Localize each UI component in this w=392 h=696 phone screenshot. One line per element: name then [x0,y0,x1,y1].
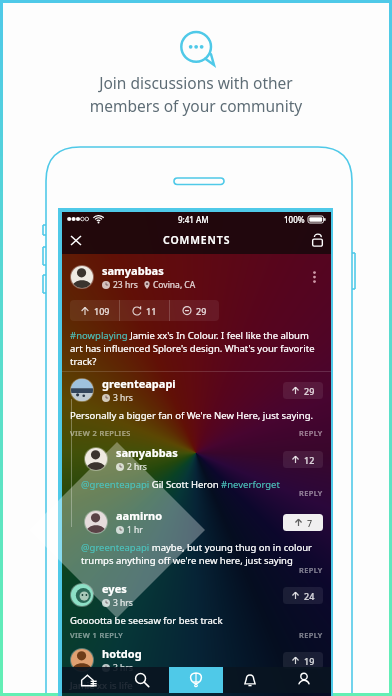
button[interactable]: Search [115,667,169,693]
staticText: 3 hrs [113,662,133,674]
staticText: Join discussions with other members of y… [3,72,389,117]
staticText: Jamie xx is life [70,679,133,692]
staticText: REPLY [299,428,323,438]
staticText: 24 [304,590,315,602]
button[interactable]: Home [62,667,115,693]
staticText: @greenteapapi maybe, but young thug on i… [81,541,320,567]
staticText: Gooootta be seesaw for best track [70,614,223,627]
staticText: 3 hrs [113,392,133,404]
staticText: samyabbas [102,263,164,278]
staticText: Personally a bigger fan of We're New Her… [70,409,314,422]
button[interactable]: greenteapapi [62,376,331,422]
button[interactable]: Lock [303,226,331,254]
button[interactable]: 109 [70,300,119,321]
staticText: 29 [304,385,315,397]
button[interactable]: REPLY [299,565,323,575]
button[interactable]: 7 [283,514,323,531]
staticText: greenteapapi [102,376,176,391]
staticText: 3 hrs [113,597,133,609]
button[interactable]: REPLY [299,630,323,640]
staticText: eyes [102,581,127,596]
staticText: VIEW 1 REPLY [70,630,124,640]
staticText: 100% [284,214,305,225]
button[interactable]: REPLY [299,488,323,498]
staticText: 19 [304,655,315,667]
button[interactable]: VIEW 1 REPLY [70,630,124,640]
button[interactable]: 19 [283,652,323,669]
staticText: VIEW 2 REPLIES [70,428,131,438]
staticText: @greenteapapi Gil Scott Heron #neverforg… [81,478,280,491]
button[interactable]: Notifications [223,667,277,693]
button[interactable]: 29 [170,300,219,321]
button[interactable]: VIEW 2 REPLIES [70,428,131,438]
button[interactable]: Discover [169,667,223,693]
staticText: COMMENTS [163,233,231,247]
button[interactable]: hotdog [62,646,331,692]
button[interactable]: More options [305,268,323,286]
staticText: samyabbas [116,445,178,460]
staticText: REPLY [299,488,323,498]
staticText: 11 [146,305,157,317]
staticText: REPLY [299,630,323,640]
button[interactable]: 11 [120,300,169,321]
button[interactable]: aamirno [62,508,331,567]
button[interactable]: 12 [283,451,323,468]
staticText: #nowplaying Jamie xx's In Colour. I feel… [70,329,323,368]
staticText: 109 [94,305,110,317]
staticText: 9:41 AM [178,214,209,225]
button[interactable]: eyes [62,581,331,627]
button[interactable]: 24 [283,587,323,604]
staticText: hotdog [102,646,142,661]
staticText: 2 hrs [127,461,147,473]
button[interactable]: REPLY [299,428,323,438]
staticText: 1 hr [127,524,143,536]
button[interactable]: samyabbas [62,445,331,491]
staticText: 7 [307,517,313,529]
staticText: aamirno [116,508,163,523]
staticText: Covina, CA [153,279,196,291]
button[interactable]: Profile [277,667,331,693]
staticText: REPLY [299,565,323,575]
button[interactable]: Close [62,226,90,254]
button[interactable]: 29 [283,382,323,399]
staticText: 12 [304,454,315,466]
staticText: 29 [196,305,207,317]
staticText: 23 hrs [113,279,138,291]
